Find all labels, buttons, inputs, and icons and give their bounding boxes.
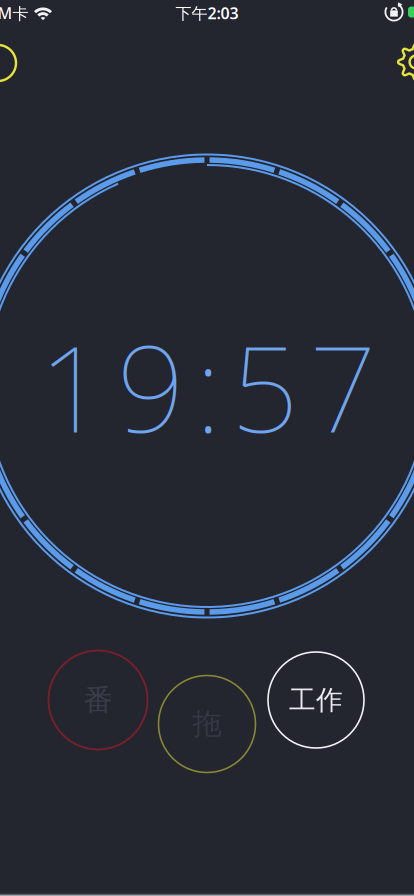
staticText: 19:57: [39, 308, 377, 465]
staticText: M卡: [0, 2, 28, 24]
staticText: 下午2:03: [175, 2, 238, 24]
button[interactable]: Statistics: [0, 43, 18, 83]
button[interactable]: 工作: [268, 652, 364, 748]
button[interactable]: 拖: [158, 675, 255, 772]
staticText: 工作: [289, 684, 343, 716]
button[interactable]: 番: [48, 650, 147, 749]
staticText: 番: [83, 682, 112, 718]
button[interactable]: Settings: [396, 42, 414, 82]
staticText: 拖: [192, 706, 221, 742]
